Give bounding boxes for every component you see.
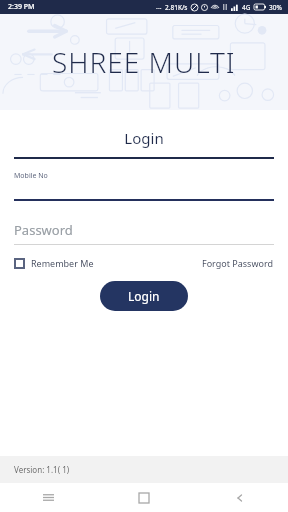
button[interactable]: Remember Me (14, 257, 94, 269)
staticText: Login (0, 128, 288, 148)
staticText: Login (128, 288, 160, 304)
staticText: 30% (269, 3, 282, 12)
staticText: Version: 1.1( 1) (14, 464, 70, 475)
button[interactable]: Password (14, 221, 274, 245)
staticText: Mobile No (14, 171, 48, 181)
button[interactable]: Back (192, 483, 288, 512)
staticText: 2:39 PM (8, 2, 35, 12)
button[interactable]: Forgot Password (202, 257, 274, 269)
button[interactable]: Mobile No (14, 171, 274, 201)
button[interactable]: Recent apps (0, 483, 96, 512)
button[interactable]: Home (96, 483, 192, 512)
staticText: Remember Me (31, 257, 94, 269)
staticText: SHREE MULTI (52, 43, 236, 81)
button[interactable]: Login (100, 281, 188, 311)
staticText: ... (156, 2, 162, 12)
staticText: 4G (242, 3, 251, 12)
staticText: 2.81K/s (165, 3, 188, 12)
staticText: Password (14, 221, 73, 239)
